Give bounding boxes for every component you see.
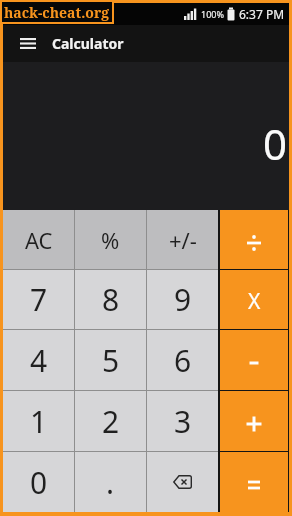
staticText: +/- xyxy=(169,225,197,255)
button[interactable]: X xyxy=(220,270,288,329)
staticText: 6 xyxy=(174,340,192,381)
button[interactable]: . xyxy=(75,452,146,512)
button[interactable] xyxy=(220,210,288,269)
staticText: 5 xyxy=(102,340,120,381)
staticText: 6:37 PM xyxy=(239,6,285,22)
staticText: % xyxy=(101,225,120,255)
button[interactable] xyxy=(220,391,288,451)
staticText: 9 xyxy=(174,279,192,320)
staticText: 3 xyxy=(174,401,192,442)
button[interactable]: 5 xyxy=(75,330,146,390)
button[interactable]: 1 xyxy=(3,391,74,451)
button[interactable]: +/- xyxy=(147,210,218,269)
staticText: 2 xyxy=(102,401,120,442)
button[interactable]: 3 xyxy=(147,391,218,451)
button[interactable]: 4 xyxy=(3,330,74,390)
button[interactable]: 8 xyxy=(75,270,146,329)
staticText: 8 xyxy=(102,279,120,320)
staticText: Calculator xyxy=(52,34,124,53)
button[interactable]: % xyxy=(75,210,146,269)
button[interactable] xyxy=(9,25,46,62)
staticText: X xyxy=(248,287,261,316)
staticText: 1 xyxy=(30,401,48,442)
staticText: hack-cheat.org xyxy=(4,3,110,22)
button[interactable]: 9 xyxy=(147,270,218,329)
button[interactable] xyxy=(220,330,288,390)
staticText: . xyxy=(106,462,115,503)
staticText: 0 xyxy=(263,115,288,172)
button[interactable]: 0 xyxy=(3,452,74,512)
button[interactable]: AC xyxy=(3,210,74,269)
button[interactable] xyxy=(220,452,288,512)
staticText: 100% xyxy=(201,8,224,20)
staticText: 7 xyxy=(30,279,48,320)
button[interactable]: 7 xyxy=(3,270,74,329)
button[interactable]: 6 xyxy=(147,330,218,390)
button[interactable] xyxy=(147,452,218,512)
staticText: 4 xyxy=(30,340,48,381)
button[interactable]: 2 xyxy=(75,391,146,451)
staticText: 0 xyxy=(30,462,48,503)
staticText: AC xyxy=(25,225,53,255)
